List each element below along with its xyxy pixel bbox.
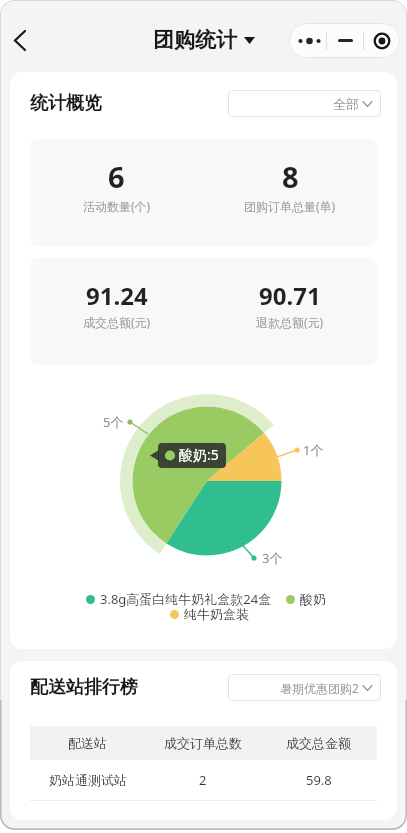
staticText: 退款总额(元)	[256, 314, 324, 330]
staticText: 5个	[103, 413, 124, 431]
staticText: 配送站排行榜	[30, 676, 138, 699]
staticText: 2	[199, 771, 207, 789]
staticText: 团购统计	[153, 27, 237, 53]
staticText: 成交总金额	[286, 735, 351, 751]
button[interactable]	[364, 23, 400, 58]
staticText: 8	[282, 157, 299, 196]
button[interactable]: 暑期优惠团购2	[228, 674, 381, 701]
staticText: 活动数量(个)	[83, 198, 151, 214]
button[interactable]: 团购统计	[153, 27, 255, 53]
button[interactable]	[327, 23, 363, 58]
staticText: 成交订单总数	[164, 735, 242, 751]
staticText: 1个	[303, 441, 324, 459]
staticText: 90.71	[259, 279, 321, 312]
staticText: 配送站	[68, 735, 107, 751]
button[interactable]: 奶站通测试站	[30, 760, 377, 800]
staticText: 3.8g高蛋白纯牛奶礼盒款24盒	[100, 590, 272, 608]
staticText: 纯牛奶盒装	[184, 606, 249, 622]
staticText: 59.8	[306, 771, 332, 789]
staticText: 酸奶	[300, 591, 326, 607]
staticText: 3个	[262, 549, 283, 567]
staticText: 暑期优惠团购2	[280, 680, 359, 696]
staticText: 团购订单总量(单)	[244, 198, 336, 214]
button[interactable]	[4, 24, 36, 56]
staticText: 酸奶:5	[179, 445, 219, 464]
staticText: 成交总额(元)	[83, 314, 151, 330]
button[interactable]: 全部	[228, 90, 381, 117]
staticText: 6	[108, 157, 125, 196]
staticText: 91.24	[86, 279, 148, 312]
staticText: 奶站通测试站	[49, 772, 127, 788]
button[interactable]	[289, 23, 326, 58]
staticText: 全部	[333, 96, 359, 112]
staticText: 统计概览	[30, 92, 102, 115]
